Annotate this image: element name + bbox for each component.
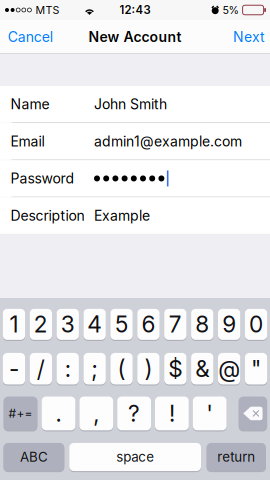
staticText: John Smith: [94, 96, 167, 113]
staticText: Cancel: [8, 28, 53, 45]
staticText: 5: [115, 311, 128, 338]
staticText: Next: [233, 28, 265, 45]
staticText: -: [9, 355, 19, 382]
staticText: 12:43: [119, 3, 150, 17]
staticText: :: [65, 355, 71, 382]
staticText: ?: [128, 400, 140, 427]
staticText: return: [217, 449, 255, 465]
button[interactable]: 6: [137, 308, 160, 340]
button[interactable]: @: [218, 352, 240, 385]
staticText: 3: [61, 311, 75, 338]
staticText: admin1@example.com: [94, 133, 242, 150]
button[interactable]: ,: [79, 396, 113, 431]
staticText: #+=: [8, 406, 32, 421]
staticText: Password: [10, 170, 74, 187]
button[interactable]: Description: [0, 197, 270, 234]
button[interactable]: .: [42, 396, 75, 431]
button[interactable]: Email: [0, 123, 270, 160]
button[interactable]: ': [193, 396, 227, 431]
staticText: 0: [249, 311, 263, 338]
staticText: 8: [195, 311, 209, 338]
button[interactable]: 0: [245, 308, 267, 340]
button[interactable]: ABC: [3, 442, 64, 472]
button[interactable]: 3: [57, 308, 79, 340]
button[interactable]: 4: [83, 308, 106, 340]
staticText: 7: [169, 311, 182, 338]
staticText: /: [37, 355, 45, 382]
staticText: (: [117, 355, 125, 382]
button[interactable]: return: [207, 442, 266, 472]
staticText: Name: [10, 96, 49, 113]
staticText: Example: [94, 207, 150, 224]
button[interactable]: Name: [0, 86, 270, 122]
button[interactable]: &: [191, 352, 213, 385]
staticText: &: [195, 355, 209, 382]
button[interactable]: 8: [191, 308, 213, 340]
staticText: MTS: [35, 3, 59, 16]
button[interactable]: Password: [0, 160, 270, 197]
staticText: 2: [34, 311, 48, 338]
staticText: ): [144, 355, 152, 382]
staticText: 6: [141, 311, 155, 338]
button[interactable]: (: [110, 352, 133, 385]
staticText: 5%: [223, 3, 239, 16]
button[interactable]: !: [155, 396, 189, 431]
staticText: 4: [87, 311, 102, 338]
button[interactable]: 2: [30, 308, 52, 340]
button[interactable]: ): [137, 352, 160, 385]
button[interactable]: Cancel: [1, 20, 60, 53]
staticText: ABC: [20, 449, 48, 465]
button[interactable]: :: [57, 352, 79, 385]
button[interactable]: /: [30, 352, 52, 385]
staticText: ;: [91, 355, 98, 382]
staticText: 1: [9, 311, 18, 338]
staticText: New Account: [88, 28, 181, 45]
staticText: 9: [222, 311, 236, 338]
button[interactable]: ?: [117, 396, 151, 431]
staticText: ': [206, 400, 213, 427]
button[interactable]: space: [69, 442, 201, 472]
button[interactable]: #+=: [4, 396, 37, 431]
button[interactable]: 9: [218, 308, 240, 340]
staticText: !: [169, 400, 175, 427]
staticText: .: [55, 400, 61, 427]
button[interactable]: Next: [226, 20, 270, 53]
button[interactable]: -: [3, 352, 25, 385]
staticText: ": [251, 355, 261, 382]
button[interactable]: Delete: [239, 396, 267, 431]
staticText: space: [116, 449, 154, 465]
button[interactable]: ": [245, 352, 267, 385]
staticText: ,: [93, 400, 99, 427]
button[interactable]: $: [164, 352, 186, 385]
button[interactable]: 5: [110, 308, 133, 340]
staticText: @: [218, 355, 240, 382]
staticText: Email: [10, 133, 44, 150]
staticText: $: [168, 355, 182, 382]
button[interactable]: 7: [164, 308, 186, 340]
button[interactable]: ;: [83, 352, 106, 385]
staticText: Description: [10, 207, 84, 224]
button[interactable]: 1: [3, 308, 25, 340]
